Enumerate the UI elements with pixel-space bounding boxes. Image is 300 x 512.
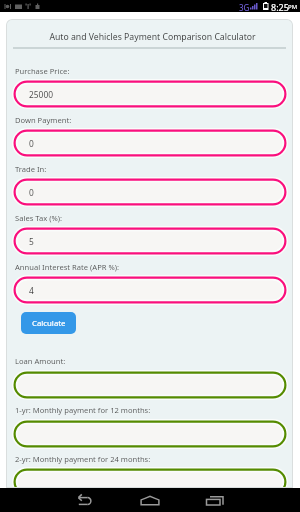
button[interactable]: 0 <box>12 177 288 207</box>
button[interactable] <box>12 419 288 449</box>
button[interactable]: 5 <box>12 226 288 256</box>
staticText: Annual Interest Rate (APR %): <box>15 262 120 272</box>
staticText: 0 <box>29 138 34 149</box>
staticText: PM <box>288 3 298 11</box>
button[interactable]: Home <box>128 488 172 512</box>
button[interactable] <box>12 370 288 400</box>
staticText: 1-yr: Monthly payment for 12 months: <box>15 405 151 415</box>
staticText: Trade In: <box>15 164 47 174</box>
staticText: Down Payment: <box>15 115 72 125</box>
staticText: Loan Amount: <box>15 356 66 366</box>
button[interactable]: 4 <box>12 275 288 305</box>
staticText: 2-yr: Monthly payment for 24 months: <box>15 454 151 464</box>
staticText: 4 <box>29 285 34 296</box>
staticText: 25000 <box>29 89 53 100</box>
staticText: Purchase Price: <box>15 66 70 76</box>
staticText: 5 <box>29 236 34 247</box>
button[interactable]: Recent apps <box>192 488 236 512</box>
staticText: 3G <box>239 2 250 13</box>
staticText: 8:25 <box>271 1 289 13</box>
staticText: 0 <box>29 187 34 198</box>
button[interactable] <box>12 467 288 488</box>
button[interactable]: Calculate <box>21 312 76 334</box>
button[interactable]: 25000 <box>12 79 288 109</box>
staticText: Sales Tax (%): <box>15 213 63 223</box>
staticText: Calculate <box>32 318 66 329</box>
button[interactable]: Back <box>64 488 108 512</box>
staticText: Auto and Vehicles Payment Comparison Cal… <box>49 31 256 43</box>
button[interactable]: 0 <box>12 128 288 158</box>
